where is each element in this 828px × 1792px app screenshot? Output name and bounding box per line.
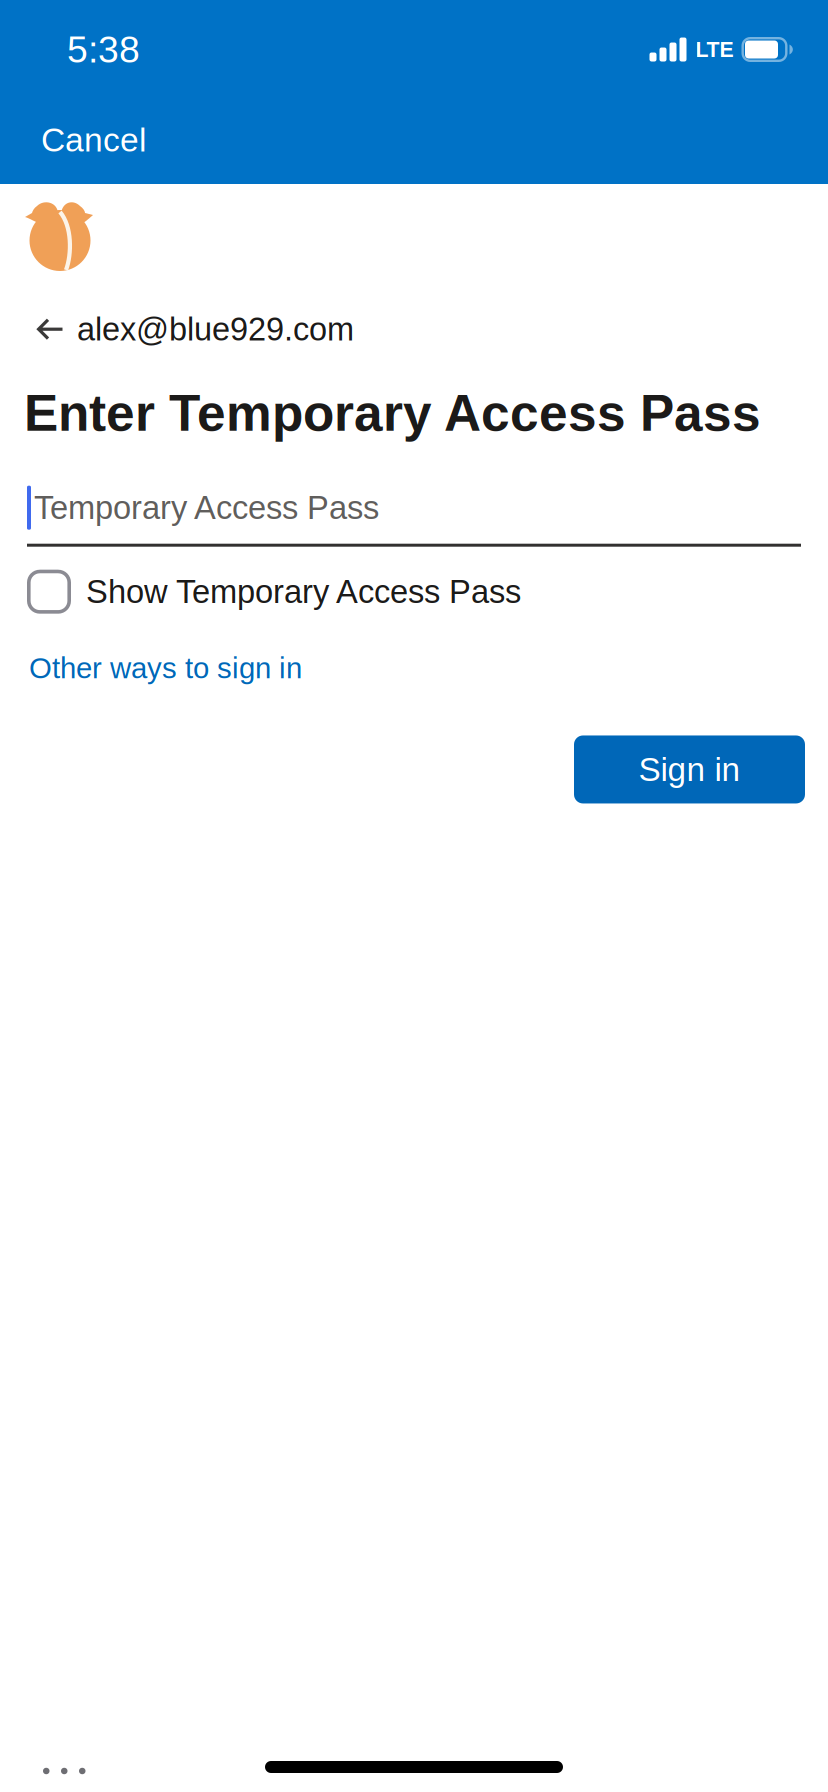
staticText: alex@blue929.com	[77, 311, 354, 347]
staticText: Cancel	[41, 121, 146, 158]
staticText: Temporary Access Pass	[34, 489, 379, 526]
button[interactable]: Temporary Access Pass	[0, 484, 801, 547]
staticText: 5:38	[67, 29, 140, 70]
button[interactable]: Sign in	[574, 735, 805, 803]
staticText: Sign in	[638, 751, 740, 788]
button[interactable]: Other ways to sign in	[0, 643, 331, 693]
staticText: LTE	[695, 38, 733, 61]
staticText: Other ways to sign in	[29, 652, 302, 684]
button[interactable]: Show Temporary Access Pass	[0, 564, 828, 620]
staticText: Enter Temporary Access Pass	[24, 384, 761, 442]
staticText: Show Temporary Access Pass	[86, 573, 521, 610]
button[interactable]: More options	[0, 1748, 105, 1786]
button[interactable]: Cancel	[0, 108, 176, 171]
button[interactable]: alex@blue929.com	[0, 305, 378, 353]
